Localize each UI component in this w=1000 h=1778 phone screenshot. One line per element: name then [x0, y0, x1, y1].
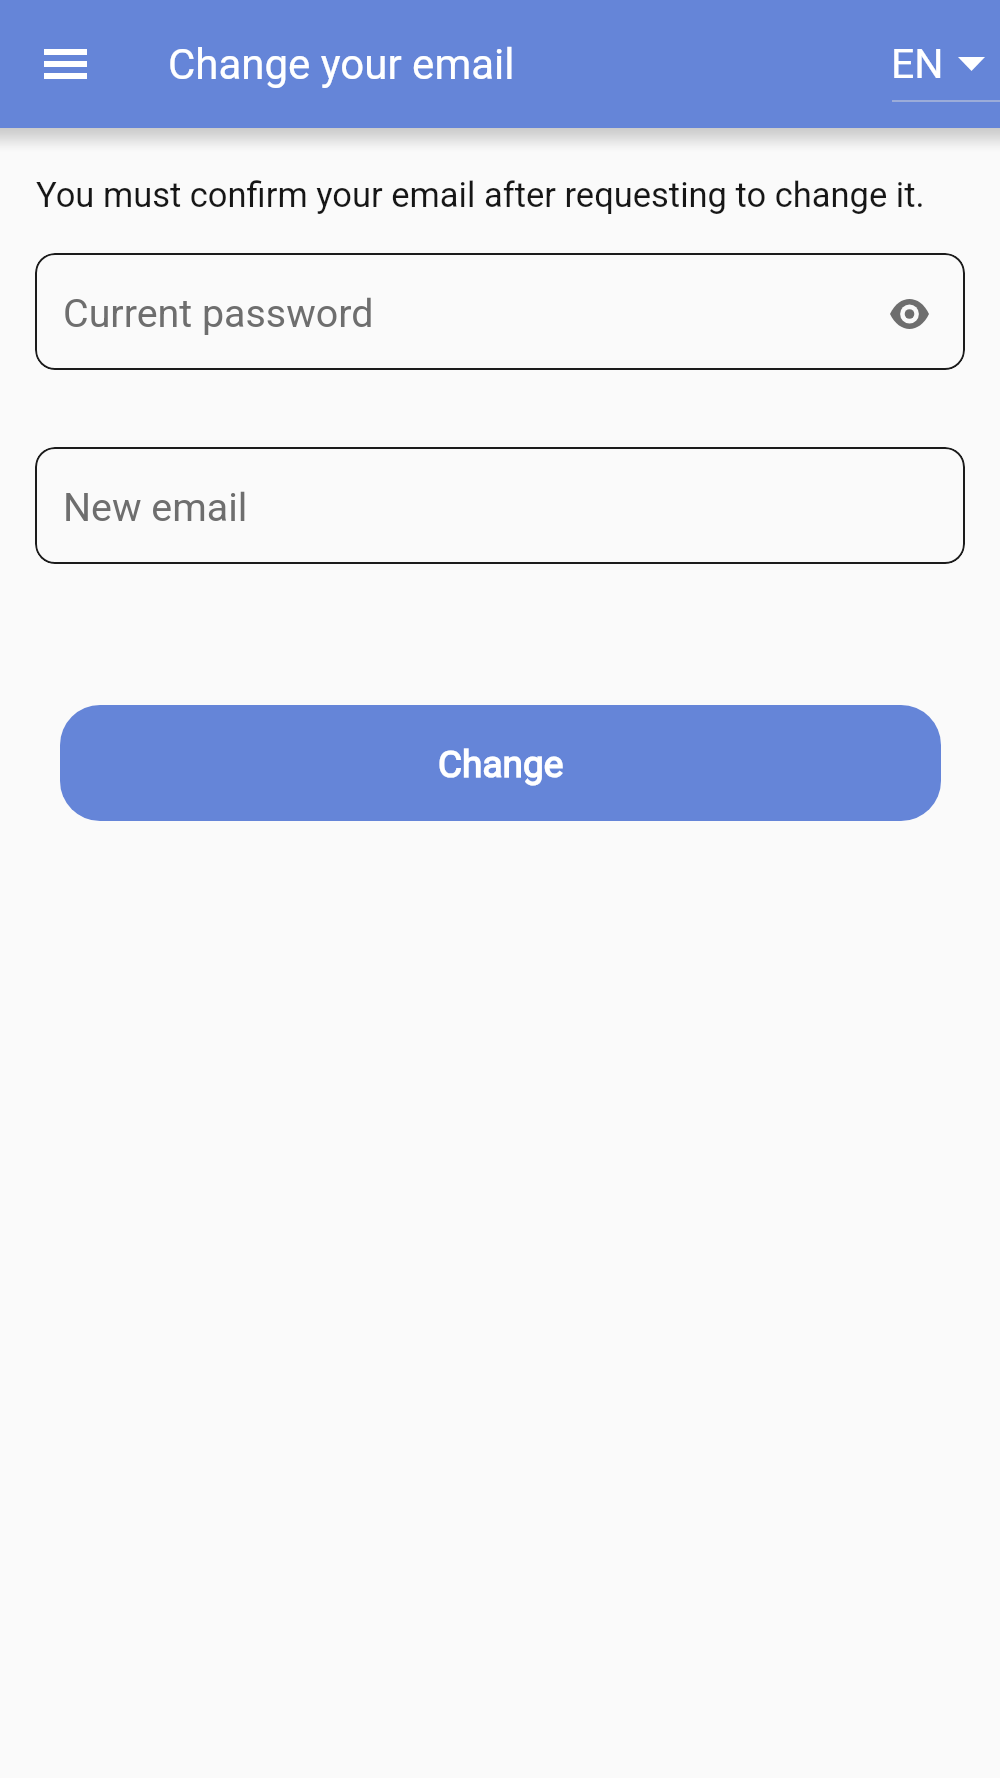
- button[interactable]: Show password: [879, 284, 939, 344]
- button[interactable]: Current password: [35, 253, 965, 370]
- staticText: Change: [438, 743, 564, 786]
- staticText: You must confirm your email after reques…: [36, 175, 1000, 215]
- staticText: Current password: [63, 290, 374, 336]
- button[interactable]: EN: [891, 20, 1000, 104]
- staticText: Change your email: [168, 40, 515, 89]
- button[interactable]: Change: [60, 705, 941, 821]
- button[interactable]: Menu: [28, 33, 102, 95]
- staticText: EN: [891, 40, 944, 88]
- staticText: New email: [63, 484, 248, 530]
- button[interactable]: New email: [35, 447, 965, 564]
